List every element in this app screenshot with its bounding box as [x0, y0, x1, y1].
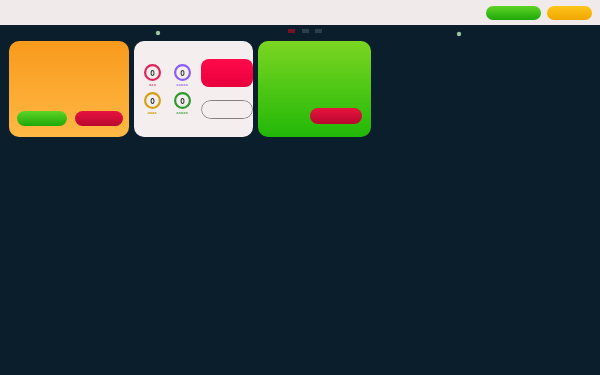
button[interactable]: Decline	[75, 111, 123, 126]
button[interactable]: 0	[140, 64, 164, 87]
staticText: 0	[150, 95, 155, 106]
button[interactable]: 0	[170, 64, 194, 87]
button[interactable]: Delete	[258, 41, 371, 137]
button[interactable]: Settings	[547, 6, 592, 20]
button[interactable]: Delete	[310, 108, 362, 124]
button[interactable]: 0	[140, 92, 164, 115]
button[interactable]: Accept	[17, 111, 67, 126]
staticText: aaaaa	[176, 82, 188, 87]
button[interactable]: Resume	[486, 6, 541, 20]
staticText: 0	[180, 67, 185, 78]
staticText: 0	[150, 67, 155, 78]
button[interactable]: More	[201, 100, 253, 119]
staticText: aaaaa	[176, 110, 188, 115]
staticText: aaaa	[147, 110, 157, 115]
button[interactable]: 0	[134, 41, 253, 137]
button[interactable]: Record	[201, 59, 253, 87]
staticText: 0	[180, 95, 185, 106]
button[interactable]: 0	[170, 92, 194, 115]
button[interactable]: Accept	[9, 41, 129, 137]
staticText: aaa	[149, 82, 156, 87]
